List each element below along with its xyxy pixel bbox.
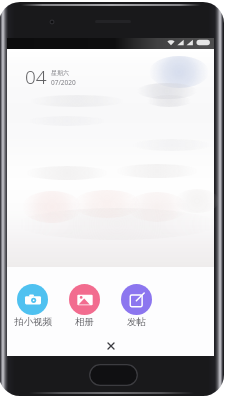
staticText: 04 xyxy=(25,64,47,90)
button[interactable]: 发帖 xyxy=(110,284,162,328)
button[interactable]: 相册 xyxy=(58,284,110,328)
staticText: 07/2020 xyxy=(51,78,76,87)
staticText: 发帖 xyxy=(127,316,146,328)
staticText: 星期六 xyxy=(51,69,69,77)
staticText: 拍小视频 xyxy=(14,316,52,328)
button[interactable]: 拍小视频 xyxy=(7,284,58,328)
button[interactable]: Close xyxy=(103,338,119,354)
staticText: 相册 xyxy=(75,316,94,328)
